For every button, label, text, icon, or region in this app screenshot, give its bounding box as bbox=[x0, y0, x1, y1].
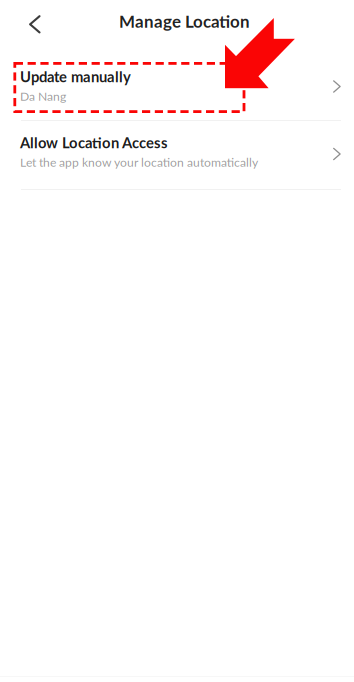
button[interactable]: Update manually bbox=[0, 52, 354, 120]
staticText: Update manually bbox=[20, 68, 131, 85]
button[interactable]: Allow Location Access bbox=[0, 121, 354, 189]
staticText: Manage Location bbox=[119, 11, 250, 31]
staticText: Da Nang bbox=[20, 89, 66, 103]
staticText: Let the app know your location automatic… bbox=[20, 155, 258, 169]
button[interactable]: Back bbox=[13, 3, 57, 45]
staticText: Allow Location Access bbox=[20, 134, 168, 151]
